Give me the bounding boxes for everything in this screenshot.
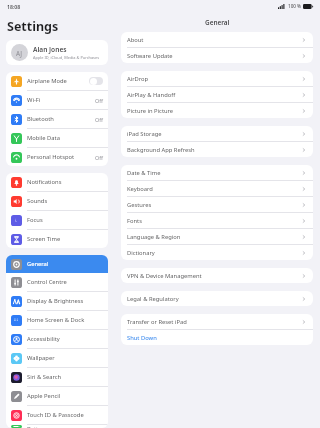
staticText: Mobile Data: [27, 134, 103, 142]
button[interactable]: AJ: [6, 40, 108, 65]
staticText: Accessibility: [27, 335, 103, 343]
button[interactable]: AirDrop: [121, 71, 313, 86]
button[interactable]: Battery: [6, 425, 108, 428]
staticText: AirPlay & Handoff: [127, 91, 301, 99]
staticText: Alan Jones: [33, 45, 67, 54]
button[interactable]: Accessibility: [6, 330, 108, 348]
button[interactable]: Mobile Data: [6, 129, 108, 147]
button[interactable]: VPN & Device Management: [121, 268, 313, 283]
staticText: Screen Time: [27, 235, 103, 243]
staticText: General: [205, 18, 230, 27]
staticText: Wallpaper: [27, 354, 103, 362]
button[interactable]: General: [6, 255, 108, 273]
button[interactable]: Airplane Mode toggle: [89, 77, 103, 85]
staticText: Siri & Search: [27, 373, 103, 381]
staticText: iPad Storage: [127, 130, 301, 138]
button[interactable]: Keyboard: [121, 181, 313, 196]
staticText: AirDrop: [127, 75, 301, 83]
staticText: 18:08: [7, 3, 21, 10]
staticText: Battery: [27, 425, 103, 428]
button[interactable]: Wi-Fi: [6, 91, 108, 109]
button[interactable]: Home Screen & Dock: [6, 311, 108, 329]
button[interactable]: Software Update: [121, 48, 313, 63]
staticText: AJ: [16, 49, 23, 57]
button[interactable]: Wallpaper: [6, 349, 108, 367]
button[interactable]: Display & Brightness: [6, 292, 108, 310]
button[interactable]: Touch ID & Passcode: [6, 406, 108, 424]
staticText: Apple Pencil: [27, 392, 103, 400]
staticText: Apple ID, iCloud, Media & Purchases: [33, 55, 100, 60]
button[interactable]: Date & Time: [121, 165, 313, 180]
button[interactable]: Fonts: [121, 213, 313, 228]
button[interactable]: Legal & Regulatory: [121, 291, 313, 306]
staticText: Personal Hotspot: [27, 153, 95, 161]
button[interactable]: Notifications: [6, 173, 108, 191]
staticText: Wi-Fi: [27, 96, 95, 104]
button[interactable]: Siri & Search: [6, 368, 108, 386]
button[interactable]: Personal Hotspot: [6, 148, 108, 166]
staticText: Off: [95, 116, 103, 123]
staticText: Sounds: [27, 197, 103, 205]
button[interactable]: Airplane Mode: [6, 72, 108, 90]
button[interactable]: Bluetooth: [6, 110, 108, 128]
staticText: 100 %: [288, 3, 301, 9]
staticText: Home Screen & Dock: [27, 316, 103, 324]
button[interactable]: Gestures: [121, 197, 313, 212]
staticText: Display & Brightness: [27, 297, 103, 305]
button[interactable]: Background App Refresh: [121, 142, 313, 157]
staticText: Focus: [27, 216, 103, 224]
staticText: Software Update: [127, 52, 301, 60]
staticText: Legal & Regulatory: [127, 295, 301, 303]
staticText: Transfer or Reset iPad: [127, 318, 301, 326]
staticText: Bluetooth: [27, 115, 95, 123]
staticText: About: [127, 36, 301, 44]
staticText: Off: [95, 97, 103, 104]
button[interactable]: Shut Down: [121, 330, 313, 345]
staticText: Dictionary: [127, 249, 301, 257]
button[interactable]: Apple Pencil: [6, 387, 108, 405]
staticText: Settings: [7, 18, 59, 35]
button[interactable]: Language & Region: [121, 229, 313, 244]
staticText: VPN & Device Management: [127, 272, 301, 280]
button[interactable]: Control Centre: [6, 273, 108, 291]
staticText: Date & Time: [127, 169, 301, 177]
staticText: Gestures: [127, 201, 301, 209]
button[interactable]: About: [121, 32, 313, 47]
button[interactable]: Transfer or Reset iPad: [121, 314, 313, 329]
staticText: Notifications: [27, 178, 103, 186]
button[interactable]: Sounds: [6, 192, 108, 210]
staticText: Fonts: [127, 217, 301, 225]
button[interactable]: Screen Time: [6, 230, 108, 248]
staticText: Shut Down: [127, 334, 307, 342]
staticText: Off: [95, 154, 103, 161]
staticText: Control Centre: [27, 278, 103, 286]
staticText: Keyboard: [127, 185, 301, 193]
button[interactable]: Focus: [6, 211, 108, 229]
staticText: Airplane Mode: [27, 77, 89, 85]
button[interactable]: iPad Storage: [121, 126, 313, 141]
button[interactable]: AirPlay & Handoff: [121, 87, 313, 102]
button[interactable]: Picture in Picture: [121, 103, 313, 118]
staticText: Touch ID & Passcode: [27, 411, 103, 419]
staticText: General: [27, 260, 103, 268]
staticText: Picture in Picture: [127, 107, 301, 115]
button[interactable]: Dictionary: [121, 245, 313, 260]
staticText: Language & Region: [127, 233, 301, 241]
staticText: Background App Refresh: [127, 146, 301, 154]
